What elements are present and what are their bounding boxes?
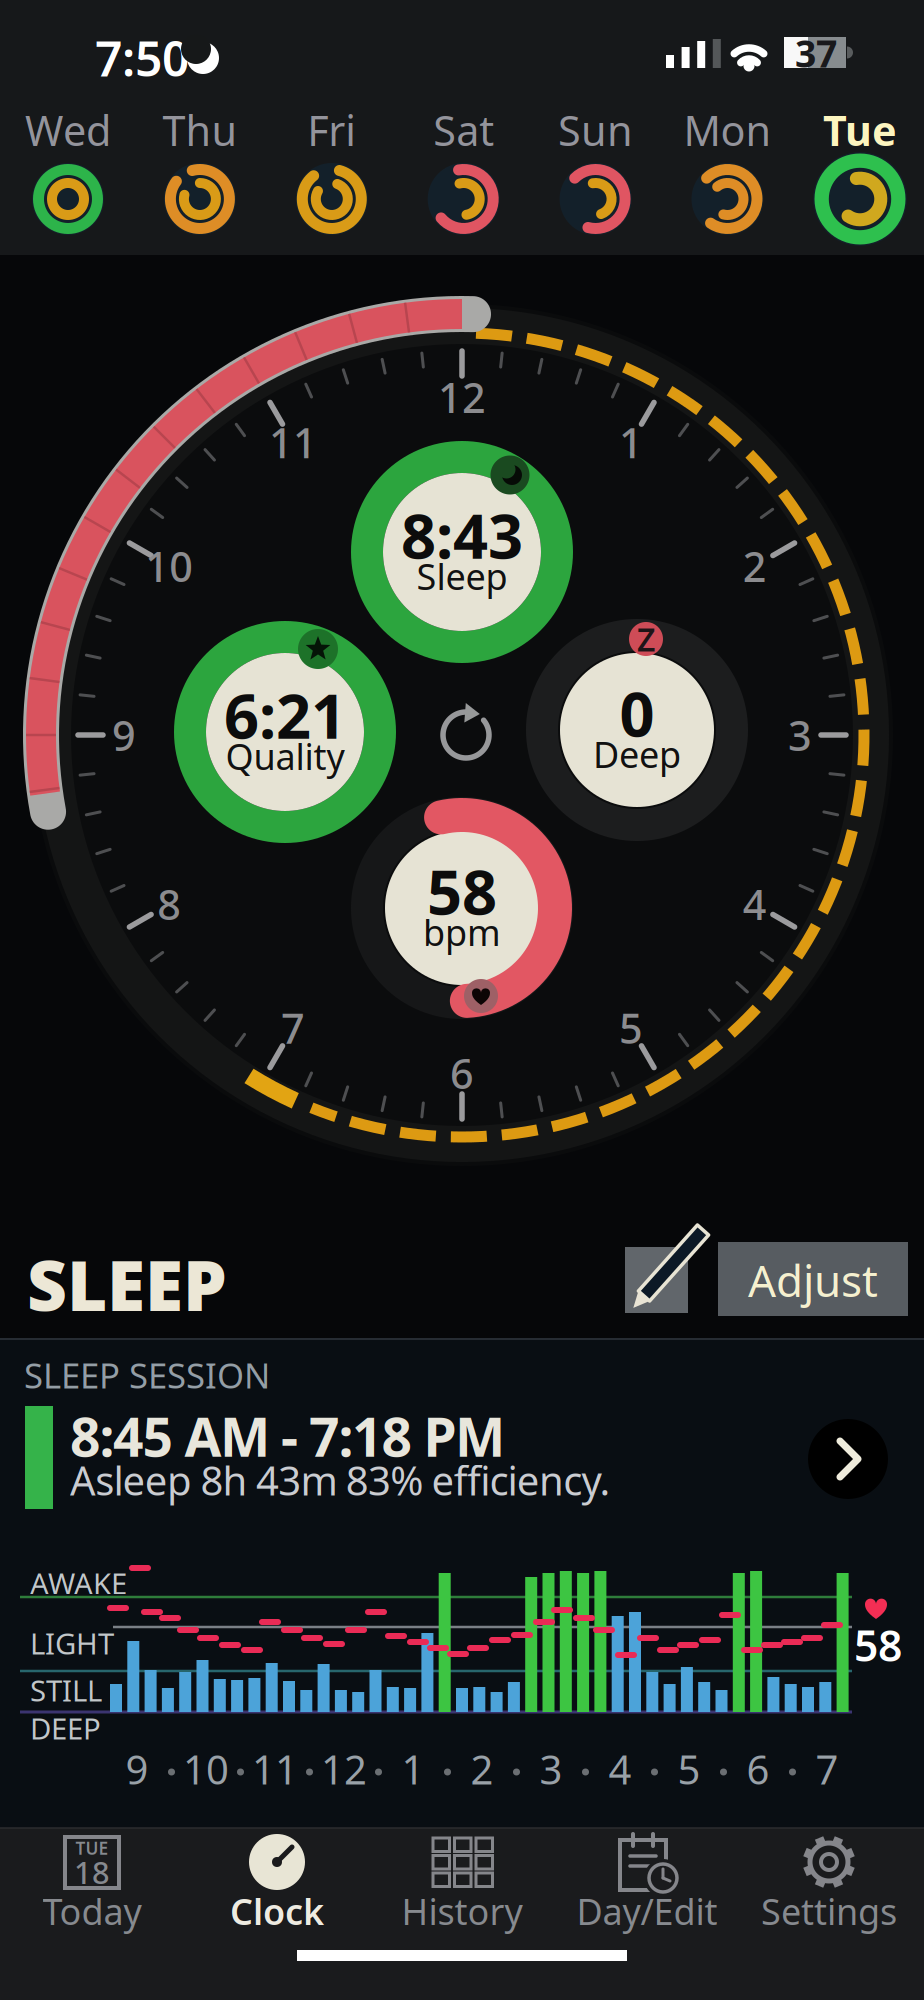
staticText: Settings bbox=[761, 1887, 897, 1935]
staticText: Wed bbox=[25, 103, 111, 157]
button[interactable]: Tue bbox=[794, 99, 924, 249]
staticText: 8 bbox=[157, 877, 181, 931]
staticText: 12 bbox=[321, 1742, 367, 1795]
staticText: Quality bbox=[225, 732, 344, 780]
staticText: 5 bbox=[619, 1000, 643, 1055]
staticText: 2 bbox=[743, 539, 767, 593]
staticText: 3 bbox=[539, 1742, 562, 1795]
staticText: 7 bbox=[281, 1000, 305, 1055]
staticText: Clock bbox=[230, 1887, 324, 1935]
staticText: TUE bbox=[75, 1836, 108, 1859]
staticText: 9 bbox=[125, 1742, 148, 1795]
staticText: 18 bbox=[74, 1852, 110, 1892]
staticText: Fri bbox=[307, 103, 356, 157]
staticText: Sat bbox=[433, 103, 494, 157]
staticText: Adjust bbox=[748, 1251, 878, 1309]
staticText: 4 bbox=[743, 877, 767, 931]
staticText: Mon bbox=[683, 103, 771, 157]
staticText: 6:21 bbox=[224, 674, 346, 756]
button[interactable]: TUE bbox=[0, 1828, 184, 1968]
staticText: Asleep 8h 43m 83% efficiency. bbox=[70, 1453, 611, 1506]
staticText: 11 bbox=[252, 1742, 298, 1795]
staticText: 1 bbox=[619, 415, 643, 470]
staticText: 8:45 AM - 7:18 PM bbox=[70, 1401, 505, 1471]
staticText: Deep bbox=[593, 730, 681, 778]
staticText: 58 bbox=[427, 850, 497, 932]
staticText: Today bbox=[42, 1887, 141, 1935]
staticText: 2 bbox=[470, 1742, 493, 1795]
staticText: bpm bbox=[423, 908, 501, 956]
staticText: 6 bbox=[450, 1046, 474, 1100]
staticText: LIGHT bbox=[30, 1623, 114, 1662]
staticText: 6 bbox=[746, 1742, 769, 1795]
button[interactable]: Adjust bbox=[718, 1242, 908, 1316]
staticText: 5 bbox=[677, 1742, 700, 1795]
button[interactable]: Clock bbox=[185, 1828, 369, 1968]
staticText: 0 bbox=[619, 672, 654, 754]
button[interactable]: Sat bbox=[398, 99, 530, 249]
staticText: Tue bbox=[823, 103, 897, 157]
button[interactable]: Edit bbox=[625, 1247, 688, 1313]
staticText: 3 bbox=[788, 708, 812, 762]
staticText: 12 bbox=[438, 370, 486, 424]
staticText: DEEP bbox=[30, 1708, 101, 1747]
button[interactable]: Sun bbox=[530, 99, 662, 249]
staticText: 10 bbox=[145, 539, 193, 593]
staticText: 7 bbox=[815, 1742, 838, 1795]
button[interactable]: 8:45 AM - 7:18 PM bbox=[12, 1398, 912, 1520]
staticText: 7:50 bbox=[95, 26, 189, 90]
staticText: SLEEP SESSION bbox=[24, 1352, 270, 1398]
staticText: 4 bbox=[608, 1742, 631, 1795]
staticText: AWAKE bbox=[30, 1563, 127, 1602]
button[interactable]: Thu bbox=[134, 99, 266, 249]
staticText: History bbox=[401, 1887, 522, 1935]
staticText: Day/Edit bbox=[576, 1887, 717, 1935]
button[interactable]: Day/Edit bbox=[555, 1828, 739, 1968]
staticText: 58 bbox=[854, 1617, 902, 1673]
staticText: STILL bbox=[30, 1670, 102, 1709]
button[interactable]: Fri bbox=[266, 99, 398, 249]
staticText: Sleep bbox=[416, 552, 507, 600]
staticText: Sun bbox=[558, 103, 633, 157]
staticText: 37 bbox=[795, 28, 837, 78]
staticText: 8:43 bbox=[401, 494, 523, 576]
button[interactable]: Wed bbox=[2, 99, 134, 249]
button[interactable]: History bbox=[370, 1828, 554, 1968]
staticText: 9 bbox=[112, 708, 136, 762]
staticText: 11 bbox=[269, 415, 317, 470]
staticText: Thu bbox=[162, 103, 237, 157]
staticText: SLEEP bbox=[27, 1238, 227, 1330]
staticText: 1 bbox=[401, 1742, 424, 1795]
staticText: 10 bbox=[183, 1742, 229, 1795]
button[interactable]: Settings bbox=[737, 1828, 921, 1968]
staticText: Z bbox=[637, 618, 655, 660]
button[interactable]: Mon bbox=[661, 99, 793, 249]
